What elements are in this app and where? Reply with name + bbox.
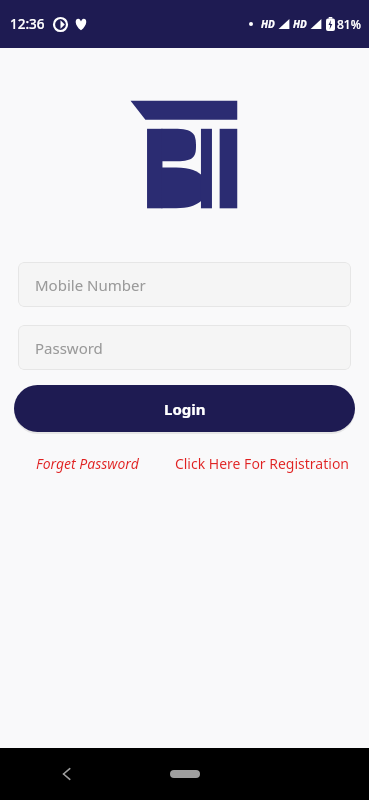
- staticText: Mobile Number: [35, 275, 146, 295]
- staticText: 12:36: [10, 15, 45, 33]
- staticText: Forget Password: [36, 454, 139, 473]
- button[interactable]: Login: [14, 385, 355, 432]
- staticText: Password: [35, 338, 103, 358]
- button[interactable]: Click Here For Registration: [174, 450, 349, 477]
- staticText: HD: [261, 17, 275, 31]
- staticText: Click Here For Registration: [174, 454, 349, 473]
- button[interactable]: Mobile Number: [18, 262, 351, 307]
- staticText: 81%: [337, 16, 361, 32]
- button[interactable]: Forget Password: [36, 450, 139, 477]
- button[interactable]: Back: [50, 757, 84, 791]
- button[interactable]: Home: [160, 763, 210, 785]
- staticText: Login: [164, 399, 206, 419]
- staticText: HD: [293, 17, 307, 31]
- button[interactable]: Password: [18, 325, 351, 370]
